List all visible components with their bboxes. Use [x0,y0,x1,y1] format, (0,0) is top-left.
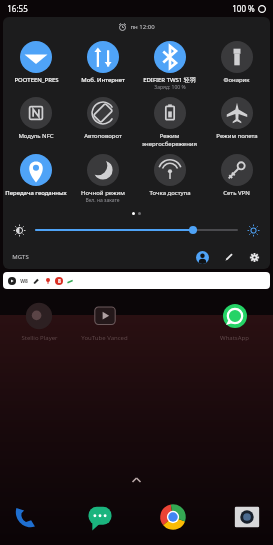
staticText: POOTEEN_PRES [14,76,59,84]
button[interactable]: User [196,251,209,264]
button[interactable]: Settings [248,251,261,264]
staticText: Вкл. на закате [85,197,120,204]
button[interactable]: Режим полета [203,97,270,140]
button[interactable]: Auto brightness [246,223,261,238]
staticText: Stellio Player [21,334,58,342]
button[interactable]: Режим энергосбережения [136,97,203,148]
staticText: W8 [20,278,28,285]
staticText: Передача геоданных [5,189,67,197]
button[interactable]: Chrome [157,501,189,533]
staticText: Фонарик [223,76,250,84]
button[interactable]: Автоповорот [69,97,136,140]
staticText: WhatsApp [220,334,249,342]
staticText: Заряд: 100 % [154,84,186,91]
button[interactable]: EDIFIER TWS1 轻羽 [136,41,203,91]
staticText: EDIFIER TWS1 轻羽 [143,76,196,84]
staticText: Точка доступа [149,189,191,197]
staticText: 8 [58,278,61,285]
staticText: Режим полета [216,132,258,140]
button[interactable]: Camera [231,501,263,533]
button[interactable]: Сеть VPN [203,154,270,197]
staticText: YouTube Vanced [81,334,128,342]
button[interactable]: YouTube Vanced [72,301,137,342]
staticText: пн 12:00 [130,23,155,31]
staticText: 100 % [232,3,255,14]
staticText: Моб. Интернет [81,76,125,84]
staticText: Автоповорот [84,132,122,140]
staticText: 16:55 [7,3,28,14]
button[interactable]: Фонарик [203,41,270,84]
staticText: MGTS [12,253,29,261]
button[interactable]: WhatsApp [202,301,267,342]
staticText: Режим энергосбережения [137,132,202,148]
staticText: Ночной режим [81,189,125,197]
button[interactable]: Messages [84,501,116,533]
button[interactable]: Моб. Интернет [69,41,136,84]
button[interactable]: POOTEEN_PRES [3,41,69,84]
button[interactable]: Phone [10,501,42,533]
button[interactable]: Модуль NFC [3,97,69,140]
button[interactable]: W8 [3,272,270,289]
staticText: Модуль NFC [18,132,54,140]
button[interactable]: Edit [222,251,235,264]
button[interactable]: Точка доступа [136,154,203,197]
button[interactable]: Ночной режим [69,154,136,204]
button[interactable]: Stellio Player [6,301,72,342]
button[interactable]: Передача геоданных [3,154,69,197]
staticText: Сеть VPN [223,189,250,197]
